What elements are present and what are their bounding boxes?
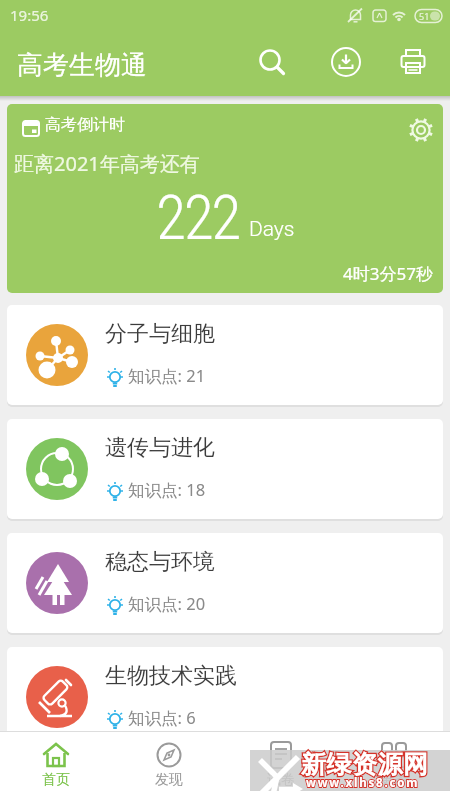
button[interactable] [404,113,438,147]
staticText: 51 [419,10,430,22]
staticText: 首页 [42,771,70,789]
staticText: 生物技术实践 [105,662,237,690]
button[interactable]: 遗传与进化 [7,419,443,519]
button[interactable] [256,46,288,78]
staticText: www.xlhs8.com [306,775,420,791]
button[interactable]: 分子与细胞 [7,305,443,405]
button[interactable] [397,46,429,78]
button[interactable]: 首页 [0,731,112,800]
staticText: 试卷 [267,771,295,789]
button[interactable]: 稳态与环境 [7,533,443,633]
button[interactable]: 发现 [113,731,225,800]
staticText: 知识点: 6 [128,706,196,729]
staticText: Days [249,217,295,242]
staticText: 19:56 [10,5,49,25]
staticText: 发现 [155,771,183,789]
staticText: www.xlhs8.com [306,775,420,791]
button[interactable]: 试卷 [225,731,337,800]
staticText: 知识点: 20 [128,592,206,615]
staticText: 遗传与进化 [105,434,215,462]
staticText: 知识点: 21 [128,364,206,387]
staticText: 新绿资源网 [301,749,429,780]
staticText: 222 [156,181,239,254]
staticText: 知识点: 18 [128,478,206,501]
staticText: 高考生物通 [17,49,147,82]
staticText: 4时3分57秒 [343,262,433,285]
button[interactable]: 更多 [338,731,450,800]
staticText: 高考倒计时 [45,115,125,135]
staticText: 距离2021年高考还有 [14,150,200,177]
button[interactable] [330,46,362,78]
button[interactable]: 生物技术实践 [7,647,443,747]
button[interactable]: 高考倒计时 [7,104,443,293]
staticText: 新绿资源网 [301,749,429,780]
staticText: 更多 [380,771,408,789]
staticText: 稳态与环境 [105,548,215,576]
staticText: 分子与细胞 [105,320,215,348]
